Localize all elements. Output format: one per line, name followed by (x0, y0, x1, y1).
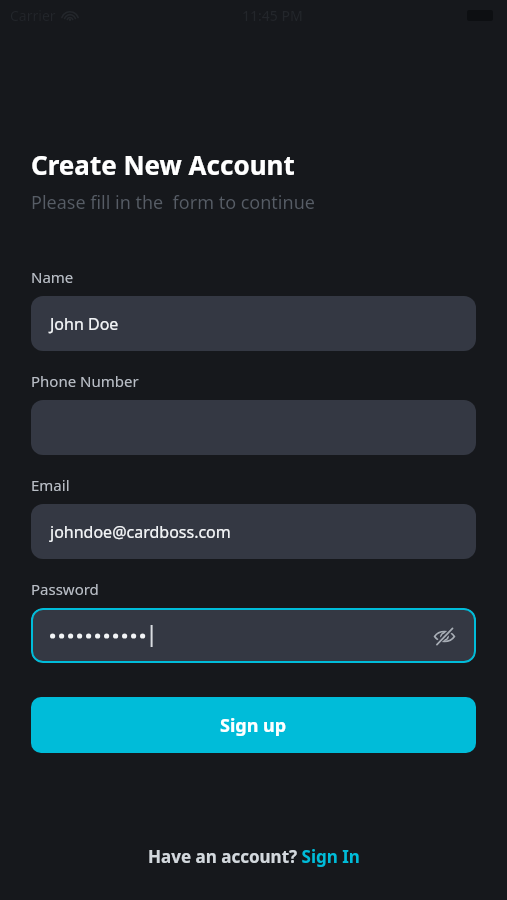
staticText: Please fill in the form to continue (31, 190, 315, 215)
staticText: John Doe (50, 313, 119, 335)
button[interactable]: Show password (428, 620, 460, 652)
button[interactable]: Show password (31, 608, 476, 663)
staticText: 11:45 PM (242, 6, 303, 25)
staticText: Carrier (10, 6, 56, 25)
staticText: Email (31, 475, 70, 495)
staticText: johndoe@cardboss.com (50, 521, 231, 543)
button[interactable]: Sign up (31, 697, 476, 753)
staticText: Have an account? Sign In (148, 845, 360, 868)
staticText: Create New Account (31, 147, 295, 182)
button[interactable]: johndoe@cardboss.com (31, 504, 476, 559)
staticText: Sign up (220, 713, 287, 738)
button[interactable]: Have an account? Sign In (136, 839, 372, 874)
staticText: Phone Number (31, 371, 139, 391)
staticText: Name (31, 267, 74, 287)
button[interactable]: John Doe (31, 296, 476, 351)
staticText: Password (31, 579, 99, 599)
